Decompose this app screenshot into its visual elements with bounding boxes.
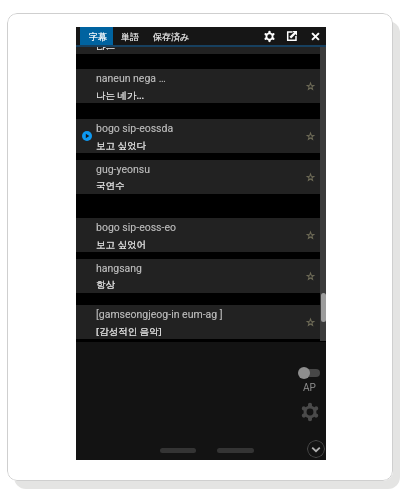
staticText: 보고 싶었어 [96,238,146,251]
staticText: 나는 [96,42,115,50]
button[interactable]: hangsang [76,259,326,293]
button[interactable]: Settings [299,401,320,422]
button[interactable]: gug-yeonsu [76,160,326,194]
staticText: hangsang [96,262,143,274]
button[interactable]: [gamseongjeog-in eum-ag ] [76,305,326,339]
staticText: [감성적인 음악] [96,325,162,338]
staticText: AP [303,382,316,394]
staticText: 単語 [121,31,139,42]
button[interactable]: 保存済み [146,27,196,45]
staticText: 나는 네가... [96,89,145,102]
button[interactable]: Close [306,27,324,45]
staticText: bogo sip-eossda [96,122,174,134]
button[interactable]: 単語 [116,27,144,45]
button[interactable]: AP toggle [296,364,322,381]
button[interactable]: naneun nega … [76,69,326,103]
staticText: naneun nega … [96,72,166,84]
button[interactable]: bogo sip-eossda [76,119,326,153]
button[interactable]: 나는 [76,46,326,54]
button[interactable]: Settings [260,27,278,45]
staticText: 字幕 [89,31,107,42]
staticText: gug-yeonsu [96,163,150,175]
staticText: 항상 [96,279,115,291]
button[interactable]: Home [217,448,254,453]
staticText: 국연수 [96,180,125,192]
button[interactable]: Recents [160,448,196,453]
staticText: [gamseongjeog-in eum-ag ] [96,308,223,320]
staticText: bogo sip-eoss-eo [96,221,176,233]
button[interactable]: bogo sip-eoss-eo [76,218,326,252]
staticText: 保存済み [153,31,190,42]
button[interactable]: 字幕 [80,27,113,45]
button[interactable]: Collapse [307,440,325,458]
staticText: 보고 싶었다 [96,139,146,152]
button[interactable]: Share [283,27,301,45]
